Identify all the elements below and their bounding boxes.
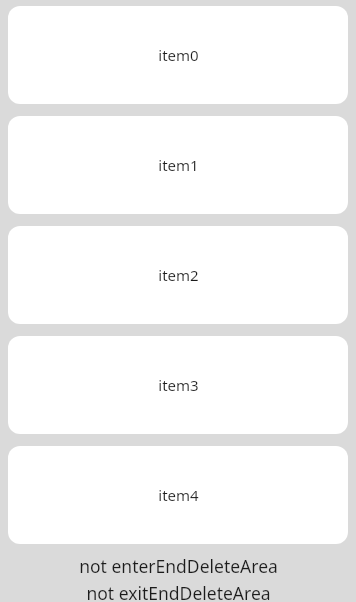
staticText: not exitEndDeleteArea <box>86 581 271 602</box>
staticText: item0 <box>158 45 199 65</box>
staticText: item3 <box>158 375 199 395</box>
button[interactable]: item3 <box>8 336 348 434</box>
staticText: item2 <box>158 265 199 285</box>
button[interactable]: item1 <box>8 116 348 214</box>
staticText: item4 <box>158 485 199 505</box>
button[interactable]: item2 <box>8 226 348 324</box>
button[interactable]: item4 <box>8 446 348 544</box>
staticText: not enterEndDeleteArea <box>79 554 278 578</box>
staticText: item1 <box>158 155 199 175</box>
button[interactable]: item0 <box>8 6 348 104</box>
